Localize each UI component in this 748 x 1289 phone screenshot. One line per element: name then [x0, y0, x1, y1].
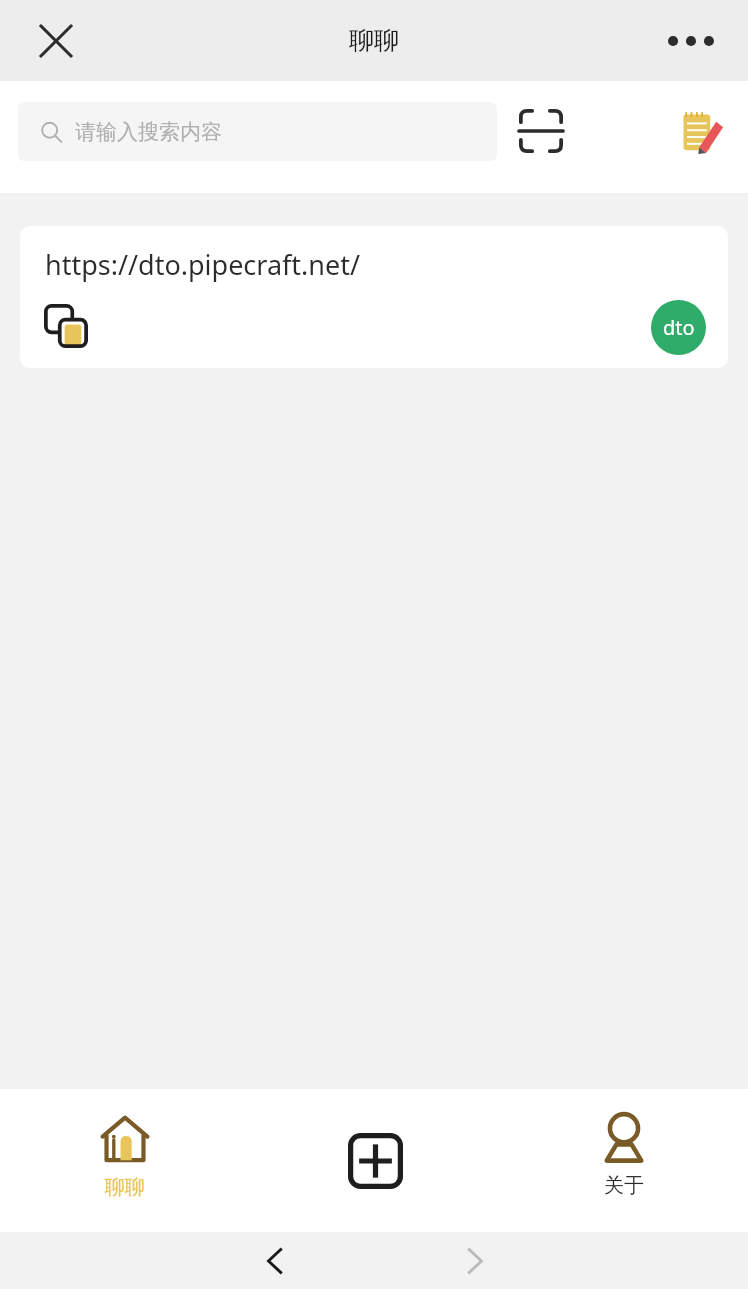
- button[interactable]: dto: [651, 300, 706, 355]
- button[interactable]: 聊聊: [65, 1098, 185, 1223]
- button[interactable]: Copy link: [42, 302, 90, 350]
- staticText: 聊聊: [349, 25, 399, 56]
- button[interactable]: Back: [245, 1232, 305, 1289]
- staticText: https://dto.pipecraft.net/: [45, 246, 361, 283]
- staticText: dto: [663, 314, 695, 341]
- button[interactable]: Forward: [445, 1232, 505, 1289]
- button[interactable]: New note: [670, 100, 732, 162]
- button[interactable]: 关于: [564, 1098, 684, 1223]
- staticText: 聊聊: [105, 1175, 145, 1200]
- button[interactable]: https://dto.pipecraft.net/: [20, 226, 728, 368]
- staticText: 关于: [604, 1173, 644, 1198]
- button[interactable]: Close: [26, 11, 86, 71]
- staticText: 请输入搜索内容: [75, 119, 222, 145]
- button[interactable]: 请输入搜索内容: [18, 102, 497, 161]
- button[interactable]: More options: [658, 13, 724, 69]
- button[interactable]: Scan: [510, 100, 572, 162]
- button[interactable]: Add: [335, 1121, 415, 1201]
